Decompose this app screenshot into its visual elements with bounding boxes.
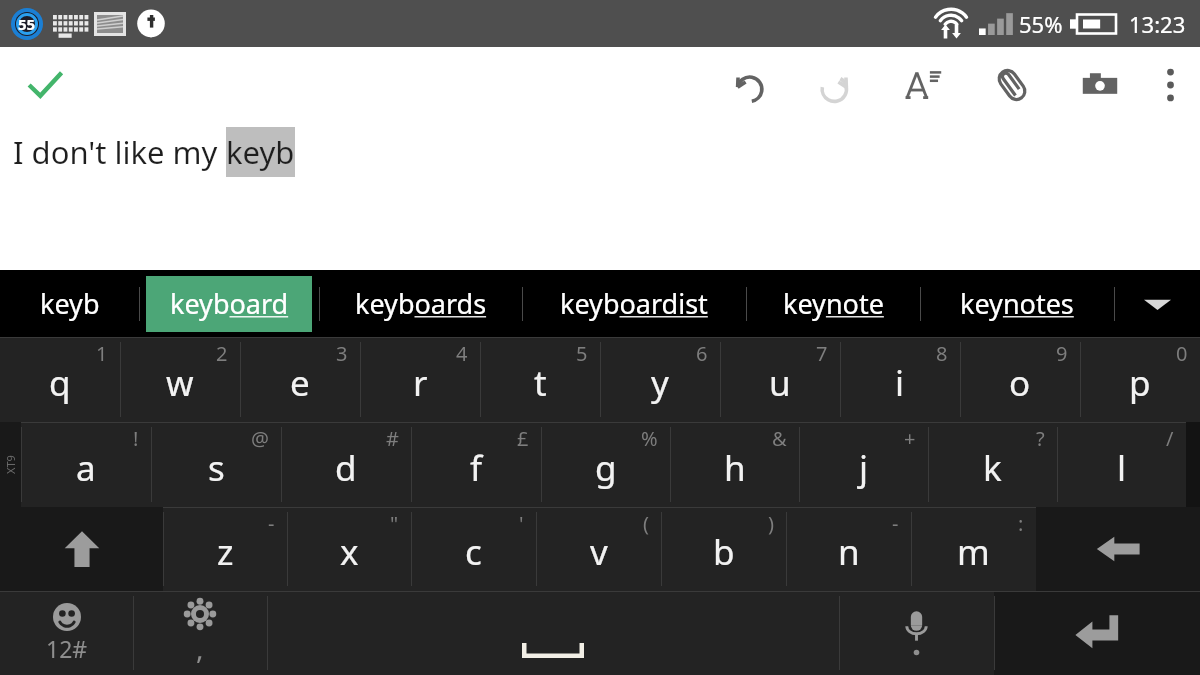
staticText: keyboardist bbox=[560, 285, 708, 322]
staticText: u bbox=[769, 359, 791, 407]
staticText: d bbox=[335, 444, 357, 492]
button[interactable]: a bbox=[21, 422, 151, 507]
staticText: ? bbox=[1036, 425, 1045, 452]
button[interactable]: r bbox=[360, 337, 480, 422]
staticText: y bbox=[651, 359, 669, 407]
staticText: , bbox=[196, 629, 204, 667]
button[interactable]: Voice input bbox=[839, 591, 994, 675]
staticText: c bbox=[465, 528, 482, 576]
staticText: m bbox=[957, 528, 990, 576]
button[interactable]: Enter bbox=[994, 591, 1200, 675]
button[interactable]: k bbox=[928, 422, 1057, 507]
staticText: ( bbox=[643, 510, 649, 537]
button[interactable]: y bbox=[600, 337, 720, 422]
button[interactable]: i bbox=[840, 337, 960, 422]
button[interactable]: u bbox=[720, 337, 840, 422]
staticText: v bbox=[590, 528, 608, 576]
button[interactable]: l bbox=[1057, 422, 1186, 507]
button[interactable]: Symbols and emoji bbox=[0, 591, 133, 675]
staticText: keynotes bbox=[960, 285, 1074, 322]
button[interactable]: Text formatting bbox=[880, 54, 968, 116]
button[interactable]: s bbox=[151, 422, 281, 507]
staticText: ' bbox=[519, 510, 524, 537]
staticText: h bbox=[724, 444, 746, 492]
staticText: b bbox=[713, 528, 735, 576]
staticText: - bbox=[892, 510, 899, 537]
staticText: 6 bbox=[696, 340, 708, 367]
staticText: e bbox=[290, 359, 310, 407]
button[interactable]: Camera bbox=[1056, 54, 1144, 116]
button[interactable]: g bbox=[541, 422, 670, 507]
button[interactable]: v bbox=[536, 507, 661, 591]
staticText: n bbox=[838, 528, 860, 576]
button[interactable]: d bbox=[281, 422, 411, 507]
staticText: p bbox=[1129, 359, 1151, 407]
staticText: ) bbox=[768, 510, 774, 537]
staticText: £ bbox=[517, 425, 529, 452]
button[interactable]: h bbox=[670, 422, 799, 507]
button[interactable]: j bbox=[799, 422, 928, 507]
button[interactable]: w bbox=[120, 337, 240, 422]
staticText: # bbox=[386, 425, 399, 452]
button[interactable]: Undo bbox=[704, 54, 792, 116]
staticText: q bbox=[49, 359, 71, 407]
button[interactable]: keyb bbox=[0, 270, 139, 337]
button[interactable]: keyboardist bbox=[522, 270, 746, 337]
staticText: 8 bbox=[936, 340, 948, 367]
staticText: a bbox=[76, 444, 96, 492]
button[interactable]: Redo bbox=[792, 54, 880, 116]
button[interactable]: b bbox=[661, 507, 786, 591]
button[interactable]: x bbox=[287, 507, 411, 591]
staticText: 5 bbox=[576, 340, 588, 367]
staticText: z bbox=[217, 528, 234, 576]
button[interactable]: o bbox=[960, 337, 1080, 422]
staticText: keyboards bbox=[355, 285, 487, 322]
button[interactable]: Backspace bbox=[1036, 507, 1200, 591]
button[interactable]: m bbox=[911, 507, 1036, 591]
staticText: 0 bbox=[1176, 340, 1188, 367]
staticText: 9 bbox=[1056, 340, 1068, 367]
staticText: x bbox=[340, 528, 359, 576]
staticText: f bbox=[470, 444, 483, 492]
staticText: t bbox=[534, 359, 547, 407]
button[interactable]: keyboards bbox=[319, 270, 522, 337]
button[interactable]: c bbox=[411, 507, 536, 591]
staticText: 55% bbox=[1019, 9, 1063, 39]
staticText: j bbox=[859, 444, 869, 492]
button[interactable]: keyboard bbox=[139, 270, 319, 337]
staticText: @ bbox=[251, 425, 269, 452]
staticText: s bbox=[208, 444, 225, 492]
button[interactable]: f bbox=[411, 422, 541, 507]
button[interactable]: Expand suggestions bbox=[1114, 270, 1200, 337]
button[interactable]: Keyboard settings bbox=[133, 591, 267, 675]
staticText: 4 bbox=[456, 340, 468, 367]
staticText: 1 bbox=[96, 340, 108, 367]
button[interactable]: q bbox=[0, 337, 120, 422]
button[interactable]: p bbox=[1080, 337, 1200, 422]
button[interactable]: Shift bbox=[0, 507, 163, 591]
staticText: o bbox=[1009, 359, 1031, 407]
staticText: & bbox=[772, 425, 787, 452]
staticText: keynote bbox=[783, 285, 884, 322]
button[interactable]: Space bbox=[267, 591, 839, 675]
button[interactable]: Attach file bbox=[968, 54, 1056, 116]
staticText: r bbox=[413, 359, 428, 407]
button[interactable]: More options bbox=[1144, 54, 1196, 116]
staticText: i bbox=[895, 359, 905, 407]
button[interactable]: e bbox=[240, 337, 360, 422]
staticText: - bbox=[268, 510, 275, 537]
staticText: keyb bbox=[226, 131, 295, 173]
button[interactable]: n bbox=[786, 507, 911, 591]
staticText: % bbox=[641, 425, 658, 452]
staticText: k bbox=[983, 444, 1002, 492]
button[interactable]: t bbox=[480, 337, 600, 422]
staticText: : bbox=[1018, 510, 1024, 537]
staticText: 55 bbox=[18, 14, 36, 34]
button[interactable]: Done bbox=[14, 54, 76, 116]
button[interactable]: keynote bbox=[746, 270, 920, 337]
staticText: 12# bbox=[46, 633, 88, 664]
button[interactable]: keynotes bbox=[920, 270, 1114, 337]
staticText: " bbox=[390, 510, 399, 537]
staticText: 2 bbox=[216, 340, 228, 367]
button[interactable]: z bbox=[163, 507, 287, 591]
